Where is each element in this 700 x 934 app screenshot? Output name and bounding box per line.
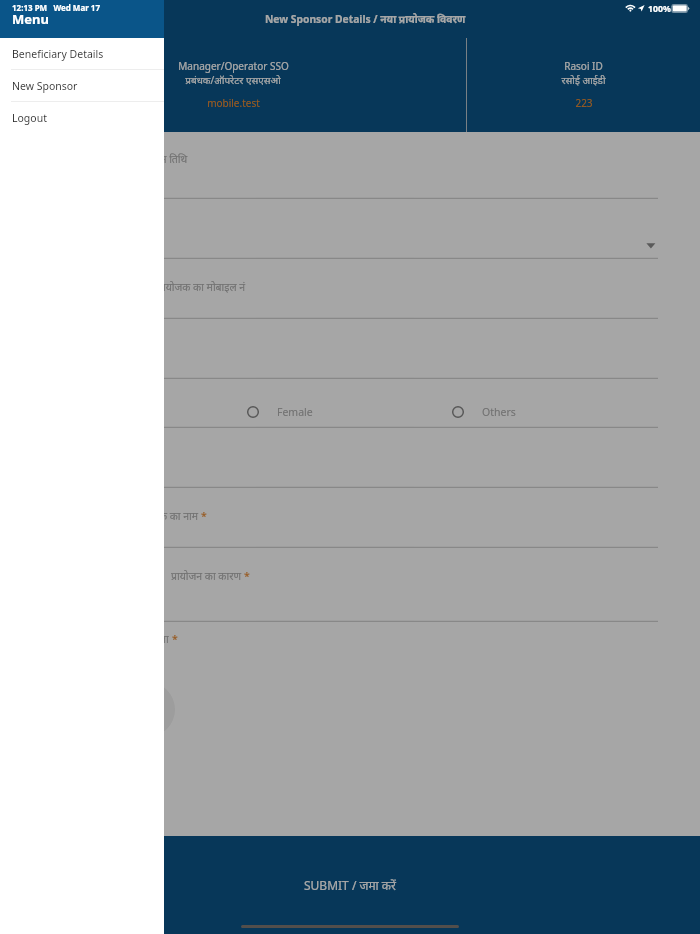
- button[interactable]: Others: [448, 402, 468, 422]
- staticText: mobile.test: [207, 96, 260, 110]
- staticText: Manager/Operator SSO: [178, 59, 289, 73]
- staticText: *: [201, 509, 207, 523]
- staticText: पता: [154, 632, 172, 646]
- staticText: New Sponsor Details / नया प्रायोजक विवरण: [265, 12, 466, 26]
- staticText: SUBMIT / जमा करें: [304, 877, 396, 893]
- staticText: प्रायोजक का मोबाइल नं: [157, 280, 246, 294]
- button[interactable]: SUBMIT / जमा करें: [0, 836, 700, 934]
- button[interactable]: Logout: [0, 102, 164, 133]
- staticText: 12:13 PM Wed Mar 17: [12, 2, 101, 13]
- button[interactable]: New Sponsor: [0, 70, 164, 101]
- staticText: 223: [575, 96, 593, 110]
- staticText: *: [244, 569, 250, 583]
- staticText: रसोई आईडी: [561, 73, 606, 87]
- staticText: *: [172, 632, 178, 646]
- button[interactable]: Add: [120, 682, 175, 737]
- staticText: प्रबंधक/ऑपरेटर एसएसओ: [185, 73, 281, 87]
- staticText: संरक्षक का नाम: [140, 509, 201, 523]
- staticText: New Sponsor: [12, 79, 78, 93]
- staticText: Logout: [12, 111, 47, 125]
- staticText: जन्म तिथि: [149, 152, 188, 166]
- staticText: Rasoi ID: [564, 59, 603, 73]
- staticText: 100%: [648, 3, 671, 15]
- staticText: Female: [277, 405, 313, 419]
- staticText: Others: [482, 405, 516, 419]
- staticText: प्रायोजन का कारण: [171, 569, 244, 583]
- staticText: Menu: [12, 10, 49, 28]
- staticText: Beneficiary Details: [12, 47, 104, 61]
- button[interactable]: Female: [243, 402, 263, 422]
- button[interactable]: Beneficiary Details: [0, 38, 164, 69]
